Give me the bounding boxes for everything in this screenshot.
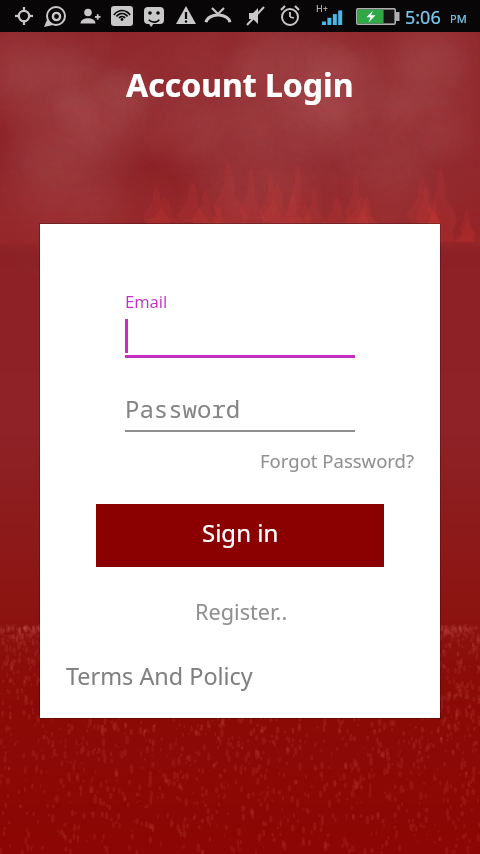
button[interactable]: Sign in (96, 504, 384, 567)
staticText: Password (125, 392, 241, 425)
button[interactable]: Terms And Policy (56, 652, 263, 700)
button[interactable]: Register.. (185, 589, 298, 635)
staticText: Sign in (202, 516, 279, 549)
staticText: Email (125, 290, 168, 312)
staticText: Terms And Policy (66, 660, 253, 692)
staticText: Forgot Password? (260, 448, 415, 473)
button[interactable]: Password field (125, 389, 355, 433)
staticText: Account Login (126, 63, 354, 107)
button[interactable]: Forgot Password? (252, 442, 423, 479)
staticText: PM (450, 11, 467, 26)
button[interactable]: Email field (125, 315, 355, 359)
staticText: 5:06 (405, 5, 441, 30)
staticText: H+ (316, 2, 328, 14)
staticText: Register.. (195, 597, 288, 627)
